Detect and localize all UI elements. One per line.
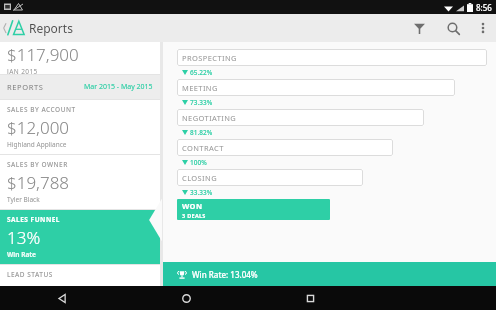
- button[interactable]: CONTRACT: [177, 139, 393, 156]
- staticText: MEETING: [182, 83, 218, 93]
- staticText: 100%: [190, 158, 207, 167]
- button[interactable]: Search: [436, 14, 470, 42]
- button[interactable]: More options: [470, 14, 496, 42]
- staticText: Win Rate: [7, 250, 37, 259]
- button[interactable]: Recent apps: [248, 286, 372, 310]
- staticText: 81.82%: [190, 128, 213, 137]
- button[interactable]: 65.22%: [182, 68, 213, 77]
- button[interactable]: 100%: [182, 158, 207, 167]
- staticText: Tyler Black: [7, 195, 40, 204]
- staticText: PROSPECTING: [182, 53, 237, 63]
- staticText: Win Rate: 13.04%: [192, 269, 258, 280]
- button[interactable]: CLOSING: [177, 169, 363, 186]
- button[interactable]: $117,900: [0, 42, 160, 74]
- button[interactable]: SALES BY OWNER: [0, 155, 160, 209]
- button[interactable]: 73.33%: [182, 98, 213, 107]
- staticText: Mar 2015 - May 2015: [84, 82, 153, 92]
- button[interactable]: NEGOTIATING: [177, 109, 424, 126]
- staticText: 73.33%: [190, 98, 213, 107]
- button[interactable]: PROSPECTING: [177, 49, 487, 66]
- staticText: 33.33%: [190, 188, 213, 197]
- button[interactable]: REPORTS: [0, 75, 160, 99]
- staticText: REPORTS: [7, 82, 44, 92]
- button[interactable]: LEAD STATUS: [0, 265, 160, 286]
- button[interactable]: Win Rate: 13.04%: [163, 262, 496, 286]
- staticText: WON: [182, 201, 203, 211]
- staticText: CONTRACT: [182, 143, 224, 153]
- button[interactable]: SALES FUNNEL: [0, 210, 160, 264]
- staticText: SALES BY OWNER: [7, 160, 68, 169]
- staticText: 65.22%: [190, 68, 213, 77]
- button[interactable]: Filter: [402, 14, 436, 42]
- button[interactable]: Back: [0, 286, 124, 310]
- button[interactable]: Home: [124, 286, 248, 310]
- staticText: SALES BY ACCOUNT: [7, 105, 76, 114]
- staticText: NEGOTIATING: [182, 113, 237, 123]
- staticText: 8:56: [476, 2, 492, 13]
- staticText: SALES FUNNEL: [7, 215, 60, 224]
- staticText: CLOSING: [182, 173, 217, 183]
- staticText: Reports: [29, 20, 73, 36]
- staticText: 3 DEALS: [182, 212, 206, 219]
- button[interactable]: MEETING: [177, 79, 455, 96]
- staticText: $117,900: [7, 43, 79, 66]
- staticText: LEAD STATUS: [7, 270, 53, 279]
- staticText: Highland Appliance: [7, 140, 67, 149]
- button[interactable]: 33.33%: [182, 188, 213, 197]
- staticText: $19,788: [7, 171, 70, 194]
- button[interactable]: SALES BY ACCOUNT: [0, 100, 160, 154]
- button[interactable]: 81.82%: [182, 128, 213, 137]
- staticText: 13%: [7, 226, 41, 249]
- button[interactable]: WON: [177, 199, 330, 220]
- staticText: JAN 2015: [7, 67, 38, 74]
- staticText: $12,000: [7, 116, 70, 139]
